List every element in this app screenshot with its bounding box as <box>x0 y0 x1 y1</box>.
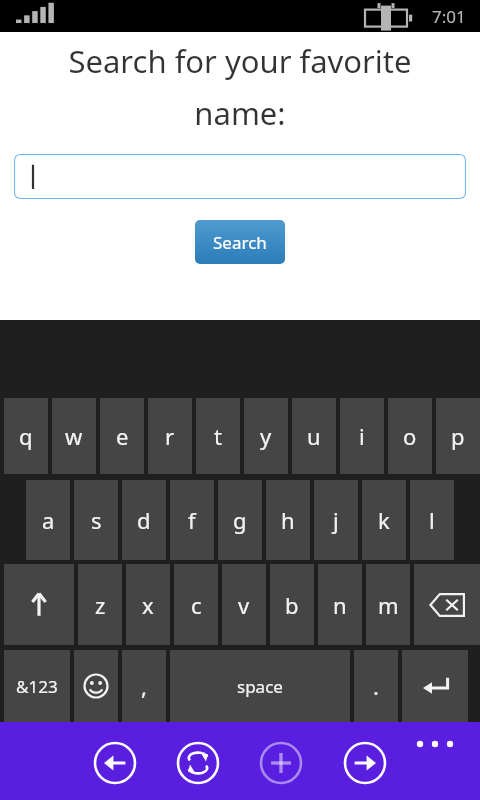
button[interactable]: u <box>292 398 336 474</box>
staticText: q <box>19 421 33 451</box>
button[interactable]: Backspace <box>414 564 480 645</box>
staticText: b <box>285 590 299 620</box>
button[interactable]: d <box>122 480 166 560</box>
button[interactable]: Emoji <box>74 650 118 722</box>
button[interactable]: More options <box>422 728 470 758</box>
button[interactable]: e <box>100 398 144 474</box>
staticText: o <box>403 421 417 451</box>
staticText: c <box>191 590 202 620</box>
button[interactable]: y <box>244 398 288 474</box>
staticText: x <box>142 590 154 620</box>
button[interactable]: v <box>222 564 266 645</box>
staticText: f <box>188 505 196 535</box>
staticText: v <box>238 590 250 620</box>
staticText: r <box>165 421 175 451</box>
staticText: p <box>451 421 465 451</box>
button[interactable]: Enter <box>402 650 468 722</box>
button[interactable]: s <box>74 480 118 560</box>
button[interactable]: q <box>4 398 48 474</box>
button[interactable]: Back <box>89 737 141 789</box>
staticText: 7:01 <box>432 5 466 28</box>
staticText: n <box>333 590 347 620</box>
staticText: u <box>307 421 321 451</box>
button[interactable]: i <box>340 398 384 474</box>
button[interactable]: &123 <box>4 650 70 722</box>
button[interactable]: f <box>170 480 214 560</box>
button[interactable]: Shift <box>4 564 74 645</box>
button[interactable] <box>14 154 466 199</box>
button[interactable]: n <box>318 564 362 645</box>
staticText: Search for your favorite name: <box>22 40 458 134</box>
button[interactable]: g <box>218 480 262 560</box>
staticText: e <box>116 421 129 451</box>
staticText: j <box>333 505 339 535</box>
staticText: t <box>214 421 222 451</box>
button[interactable]: Forward <box>339 737 391 789</box>
staticText: l <box>429 505 435 535</box>
staticText: space <box>237 675 283 698</box>
button[interactable]: z <box>78 564 122 645</box>
button[interactable]: Search <box>195 220 285 264</box>
button[interactable]: l <box>410 480 454 560</box>
button[interactable]: h <box>266 480 310 560</box>
staticText: a <box>42 505 55 535</box>
button[interactable]: b <box>270 564 314 645</box>
button[interactable]: . <box>354 650 398 722</box>
staticText: m <box>378 590 399 620</box>
button[interactable]: c <box>174 564 218 645</box>
button[interactable]: , <box>122 650 166 722</box>
button[interactable]: a <box>26 480 70 560</box>
staticText: s <box>91 505 102 535</box>
button[interactable]: x <box>126 564 170 645</box>
button[interactable]: p <box>436 398 480 474</box>
button[interactable]: k <box>362 480 406 560</box>
staticText: i <box>359 421 365 451</box>
button[interactable]: space <box>170 650 350 722</box>
button[interactable]: r <box>148 398 192 474</box>
button[interactable]: o <box>388 398 432 474</box>
button[interactable]: Refresh <box>172 737 224 789</box>
staticText: w <box>65 421 83 451</box>
staticText: Search <box>213 231 267 254</box>
staticText: , <box>141 671 147 701</box>
staticText: h <box>281 505 295 535</box>
staticText: k <box>378 505 390 535</box>
staticText: y <box>260 421 272 451</box>
staticText: &123 <box>16 675 58 698</box>
button[interactable]: Add <box>255 737 307 789</box>
button[interactable]: t <box>196 398 240 474</box>
button[interactable]: j <box>314 480 358 560</box>
staticText: z <box>95 590 106 620</box>
staticText: . <box>373 671 379 701</box>
staticText: d <box>137 505 151 535</box>
staticText: g <box>233 505 247 535</box>
button[interactable]: w <box>52 398 96 474</box>
button[interactable]: m <box>366 564 410 645</box>
